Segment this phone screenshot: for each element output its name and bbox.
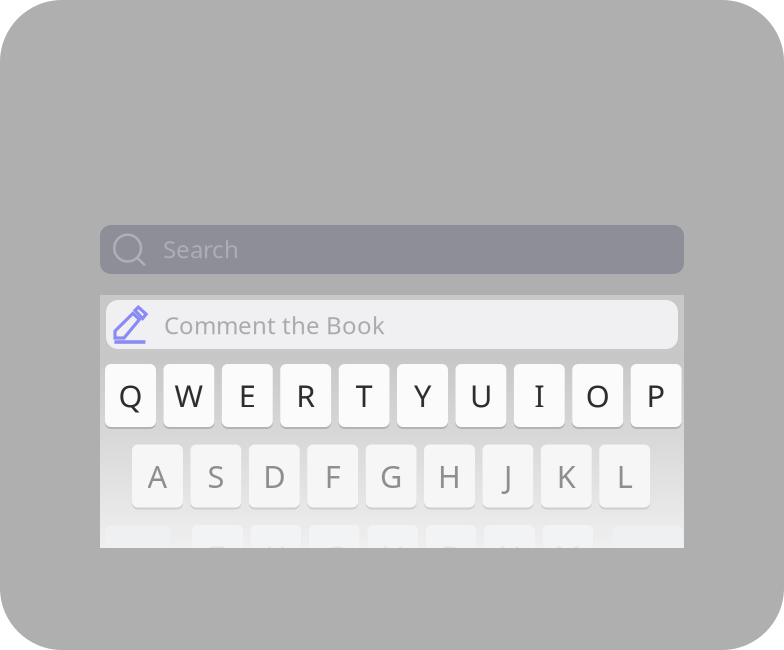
button[interactable]: M [542,525,593,590]
staticText: N [498,536,521,577]
button[interactable]: L [599,444,650,509]
button[interactable]: Comment the Book [106,300,678,349]
staticText: X [267,536,285,577]
staticText: F [325,456,341,496]
button[interactable]: O [572,364,623,429]
staticText: I [534,375,544,416]
staticText: S [207,456,224,496]
button[interactable]: Q [105,364,156,429]
staticText: Comment the Book [164,309,385,341]
staticText: Q [118,375,142,416]
staticText: K [557,456,576,496]
button[interactable]: G [366,444,417,509]
staticText: D [263,456,285,496]
staticText: O [586,375,610,416]
button[interactable]: W [163,364,214,429]
button[interactable]: I [514,364,565,429]
button[interactable]: U [455,364,506,429]
staticText: H [438,456,461,496]
button[interactable]: V [367,525,418,590]
button[interactable]: Delete [612,526,682,589]
staticText: T [356,375,373,416]
button[interactable]: T [339,364,390,429]
staticText: V [384,536,402,577]
button[interactable]: C [309,525,360,590]
button[interactable]: K [541,444,592,509]
button[interactable]: R [280,364,331,429]
staticText: A [147,456,167,496]
button[interactable]: S [190,444,241,509]
button[interactable]: E [222,364,273,429]
staticText: P [647,375,666,416]
button[interactable]: X [250,525,301,590]
staticText: J [504,456,512,496]
button[interactable]: P [631,364,682,429]
staticText: C [325,536,344,577]
staticText: Y [414,375,431,416]
staticText: Search [163,233,239,265]
staticText: B [441,536,461,577]
button[interactable]: F [307,444,358,509]
staticText: M [554,536,582,577]
staticText: G [380,456,402,496]
staticText: Z [208,536,226,577]
button[interactable]: A [132,444,183,509]
staticText: U [470,375,492,416]
button[interactable]: D [249,444,300,509]
button[interactable]: N [484,525,535,590]
button[interactable]: Z [192,525,243,590]
staticText: E [239,375,256,416]
button[interactable]: Search [100,225,684,274]
button[interactable]: Shift [105,526,170,589]
button[interactable]: H [424,444,475,509]
staticText: L [617,456,633,496]
staticText: W [174,375,203,416]
button[interactable]: Y [397,364,448,429]
button[interactable]: J [482,444,533,509]
button[interactable]: B [426,525,477,590]
staticText: R [296,375,315,416]
